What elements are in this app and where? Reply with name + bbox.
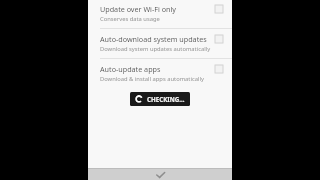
- staticText: Download system updates automatically: [100, 45, 211, 53]
- button[interactable]: Confirm: [88, 169, 232, 180]
- button[interactable]: Toggle Update over Wi-Fi only: [215, 5, 223, 13]
- staticText: Update over Wi-Fi only: [100, 4, 177, 14]
- button[interactable]: Auto-download system updates: [88, 29, 232, 58]
- button[interactable]: Toggle Auto-update apps: [215, 65, 223, 73]
- button[interactable]: Auto-update apps: [88, 59, 232, 88]
- staticText: CHECKING...: [147, 95, 185, 103]
- staticText: Conserves data usage: [100, 15, 160, 23]
- button[interactable]: CHECKING...: [130, 92, 190, 106]
- staticText: Auto-update apps: [100, 64, 161, 74]
- button[interactable]: Toggle Auto-download system updates: [215, 35, 223, 43]
- button[interactable]: Update over Wi-Fi only: [88, 0, 232, 28]
- staticText: Download & install apps automatically: [100, 75, 204, 83]
- staticText: Auto-download system updates: [100, 34, 207, 44]
